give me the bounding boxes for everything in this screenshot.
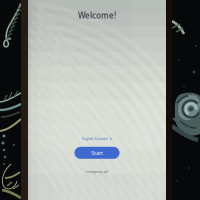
staticText: English (Canada) <box>82 137 108 141</box>
button[interactable]: English (Canada) <box>80 136 114 142</box>
staticText: Welcome! <box>78 10 116 21</box>
staticText: Emergency call <box>85 170 108 174</box>
staticText: Start <box>91 149 103 157</box>
staticText: ▾ <box>110 137 112 141</box>
button[interactable]: Emergency call <box>83 169 110 175</box>
button[interactable]: Start <box>74 147 119 159</box>
